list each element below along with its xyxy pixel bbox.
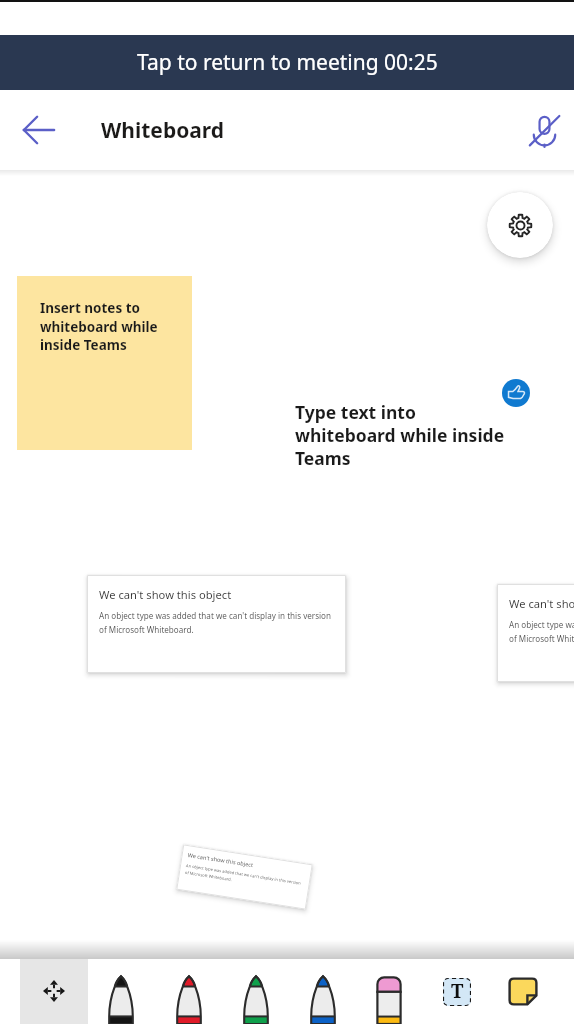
staticText: An object type was added that we can't d…	[99, 610, 335, 635]
button[interactable]: Like	[502, 379, 530, 407]
staticText: An object type was added that we can't d…	[184, 863, 303, 894]
button[interactable]: Sticky note	[508, 977, 538, 1006]
staticText: Insert notes to whiteboard while inside …	[40, 299, 160, 353]
staticText: We can't show this object	[187, 851, 254, 869]
button[interactable]: Pen	[108, 975, 134, 1024]
button[interactable]: Pen	[176, 975, 202, 1024]
staticText: Whiteboard	[101, 116, 225, 145]
button[interactable]: Text	[443, 978, 471, 1006]
button[interactable]: Eraser	[376, 976, 402, 1024]
staticText: T	[451, 978, 464, 1004]
button[interactable]: Back	[15, 106, 63, 154]
button[interactable]: Pan	[20, 959, 88, 1024]
button[interactable]: Pen	[310, 975, 336, 1024]
button[interactable]: Tap to return to meeting 00:25	[0, 35, 574, 90]
button[interactable]: Settings	[487, 192, 553, 258]
staticText: Type text into whiteboard while inside T…	[295, 400, 510, 470]
staticText: We can't show this object	[99, 587, 232, 602]
button[interactable]: We can't show this object	[176, 844, 313, 910]
staticText: Tap to return to meeting 00:25	[137, 48, 438, 77]
button[interactable]: We can't show this object	[497, 584, 574, 682]
button[interactable]: We can't show this object	[87, 575, 346, 673]
button[interactable]: Insert notes to whiteboard while inside …	[17, 276, 192, 450]
staticText: An object type was added that we can't d…	[509, 619, 574, 644]
staticText: We can't show this object	[509, 596, 574, 611]
button[interactable]: Microphone muted	[520, 106, 568, 154]
button[interactable]: Pen	[243, 975, 269, 1024]
